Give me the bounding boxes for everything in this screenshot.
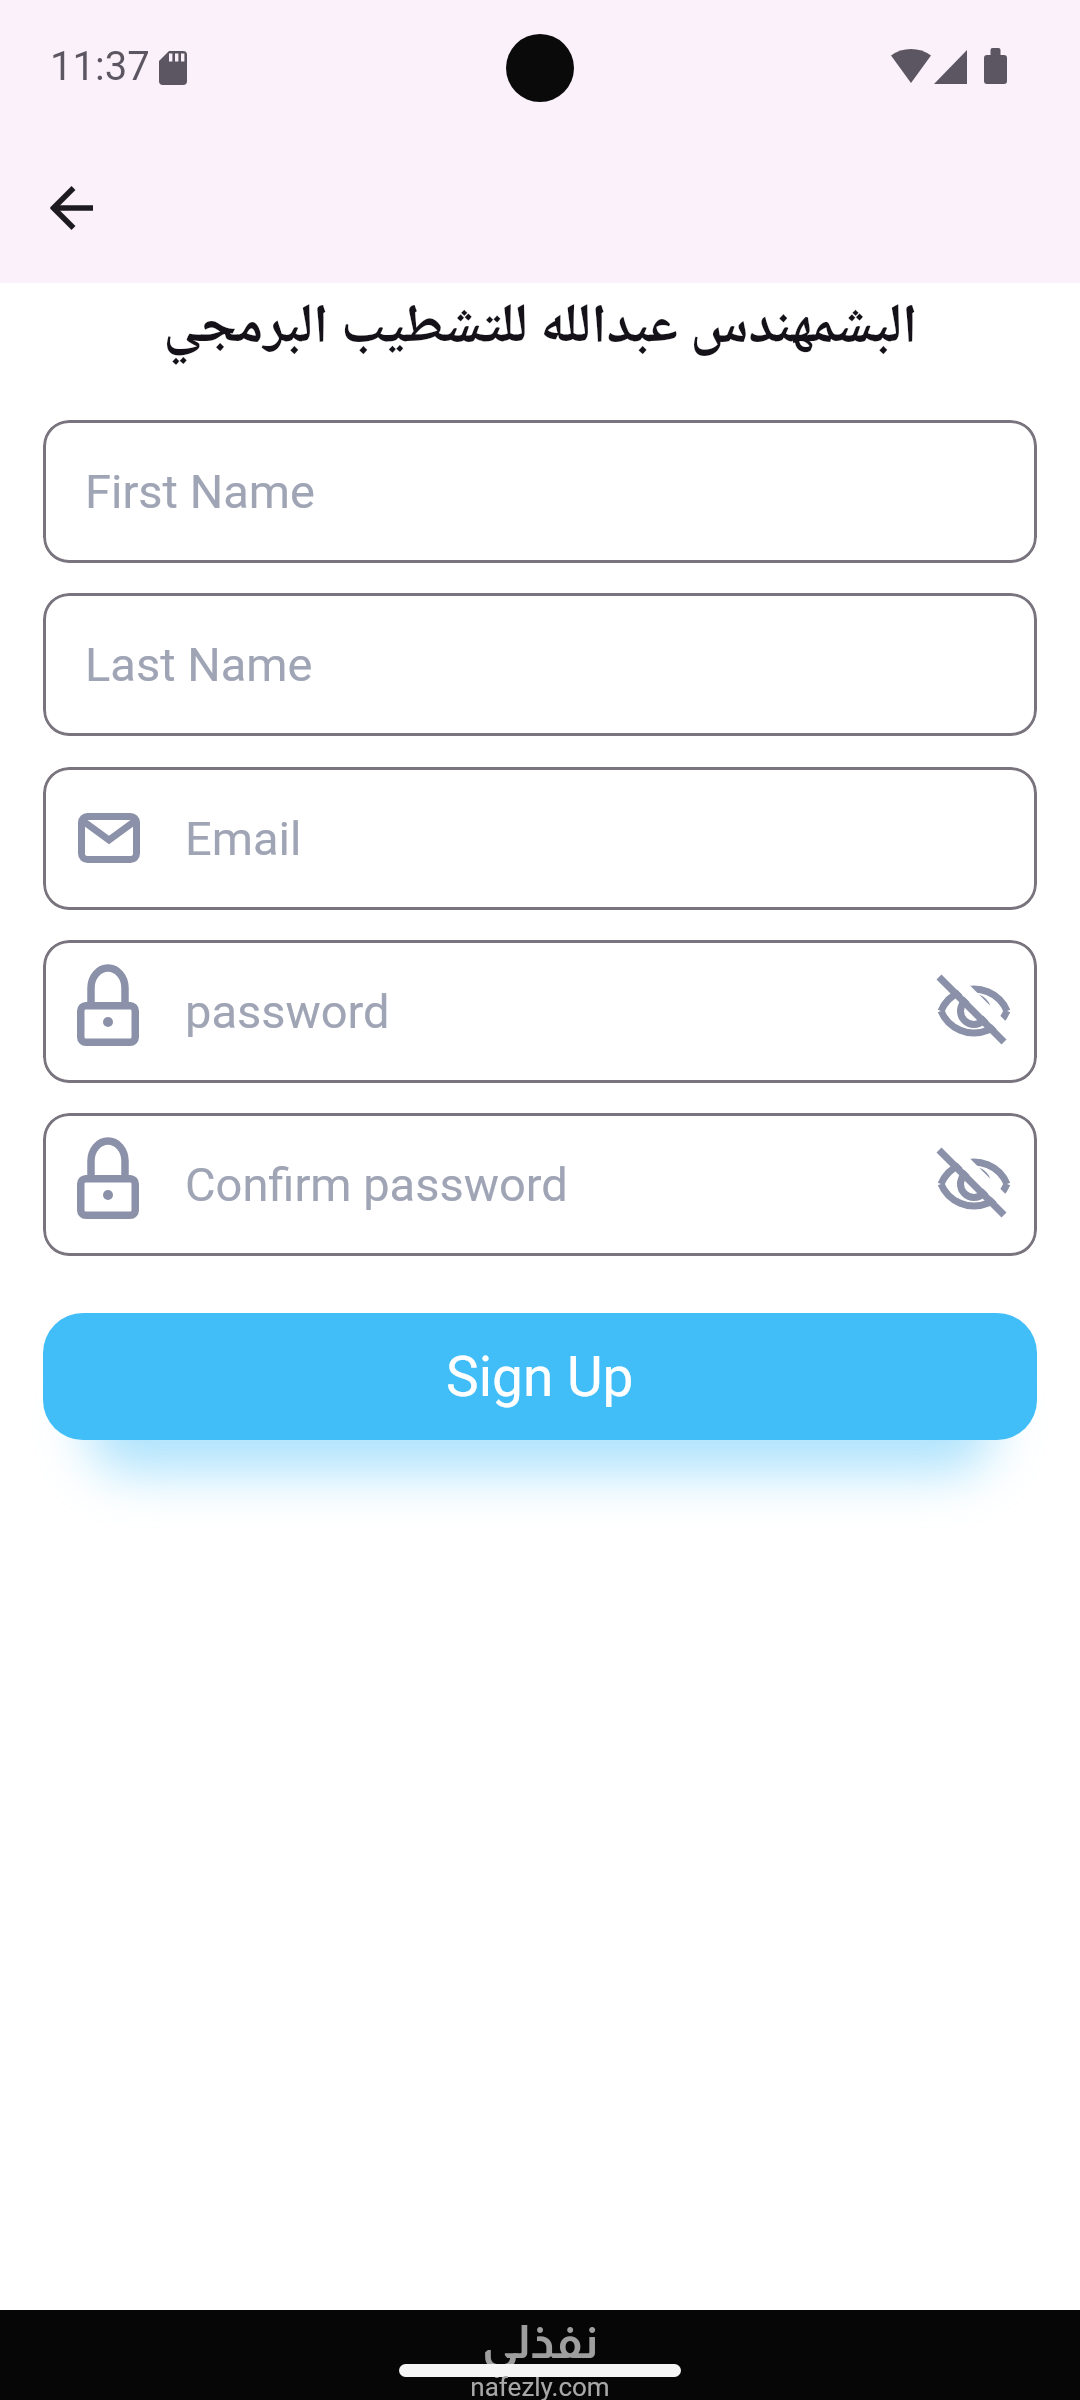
button[interactable]: First Name — [43, 420, 1037, 563]
staticText: 11:37 — [50, 43, 150, 90]
button[interactable]: Email — [43, 767, 1037, 910]
button[interactable] — [37, 172, 109, 244]
button[interactable]: Last Name — [43, 593, 1037, 736]
staticText: Last Name — [85, 637, 313, 692]
staticText: البشمهندس عبدالله للتشطيب البرمجي — [163, 283, 918, 377]
button[interactable]: Confirm password — [43, 1113, 1037, 1256]
staticText: Sign Up — [446, 1345, 634, 1409]
staticText: First Name — [85, 464, 315, 519]
staticText: Confirm password — [185, 1157, 568, 1212]
button[interactable]: password — [43, 940, 1037, 1083]
staticText: نفذلي — [0, 2316, 1080, 2367]
staticText: password — [185, 984, 390, 1039]
staticText: Email — [185, 811, 302, 866]
button[interactable]: Sign Up — [43, 1313, 1037, 1440]
staticText: nafezly.com — [0, 2372, 1080, 2400]
